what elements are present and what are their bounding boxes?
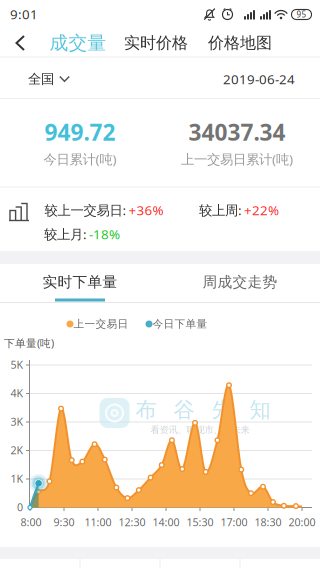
- staticText: 3K: [10, 414, 23, 429]
- staticText: 成交量: [49, 31, 106, 54]
- staticText: 较上一交易日:: [44, 201, 126, 219]
- staticText: 12:30: [118, 515, 145, 529]
- button[interactable]: 实时下单量: [0, 263, 160, 301]
- staticText: 17:00: [220, 515, 247, 529]
- button[interactable]: 实时价格: [124, 33, 188, 53]
- staticText: +22%: [244, 201, 279, 219]
- staticText: 5K: [10, 357, 23, 372]
- staticText: 4K: [10, 386, 23, 400]
- staticText: 2019-06-24: [223, 70, 295, 88]
- staticText: 较上周:: [199, 201, 242, 219]
- staticText: -18%: [89, 225, 120, 243]
- button[interactable]: 2019-06-24: [223, 70, 295, 88]
- staticText: 2K: [10, 443, 23, 457]
- staticText: 全国: [28, 71, 54, 87]
- staticText: 周成交走势: [202, 273, 277, 291]
- staticText: 价格地图: [208, 33, 272, 53]
- staticText: 949.72: [44, 117, 115, 147]
- staticText: +36%: [128, 201, 163, 219]
- staticText: 11:00: [84, 515, 111, 529]
- staticText: 14:00: [152, 515, 179, 529]
- staticText: 9:30: [53, 515, 74, 529]
- staticText: 8:00: [20, 515, 41, 529]
- staticText: 95: [296, 9, 306, 20]
- staticText: 0: [17, 500, 23, 514]
- staticText: 今日累计(吨): [43, 150, 116, 168]
- staticText: 15:30: [186, 515, 213, 529]
- staticText: 9:01: [10, 5, 38, 23]
- staticText: 34037.34: [188, 117, 285, 147]
- staticText: 上一交易日累计(吨): [181, 150, 293, 168]
- button[interactable]: 周成交走势: [160, 263, 320, 301]
- staticText: 较上月:: [44, 225, 87, 243]
- staticText: 先: [211, 397, 232, 423]
- staticText: 谷: [173, 397, 194, 423]
- staticText: 上一交易日: [73, 317, 128, 330]
- button[interactable]: 成交量: [49, 31, 106, 54]
- staticText: 20:00: [288, 515, 315, 529]
- staticText: 下单量(吨): [4, 336, 54, 350]
- staticText: 实时价格: [124, 33, 188, 53]
- staticText: 看资讯、聊现市、知未来: [150, 424, 249, 436]
- button[interactable]: 价格地图: [208, 33, 272, 53]
- button[interactable]: Back: [13, 35, 27, 51]
- staticText: 知: [249, 397, 270, 423]
- staticText: 实时下单量: [42, 273, 117, 291]
- staticText: 1K: [10, 471, 23, 486]
- staticText: 布: [135, 397, 156, 423]
- staticText: 今日下单量: [152, 317, 207, 330]
- button[interactable]: 全国: [28, 71, 70, 87]
- staticText: 18:30: [254, 515, 281, 529]
